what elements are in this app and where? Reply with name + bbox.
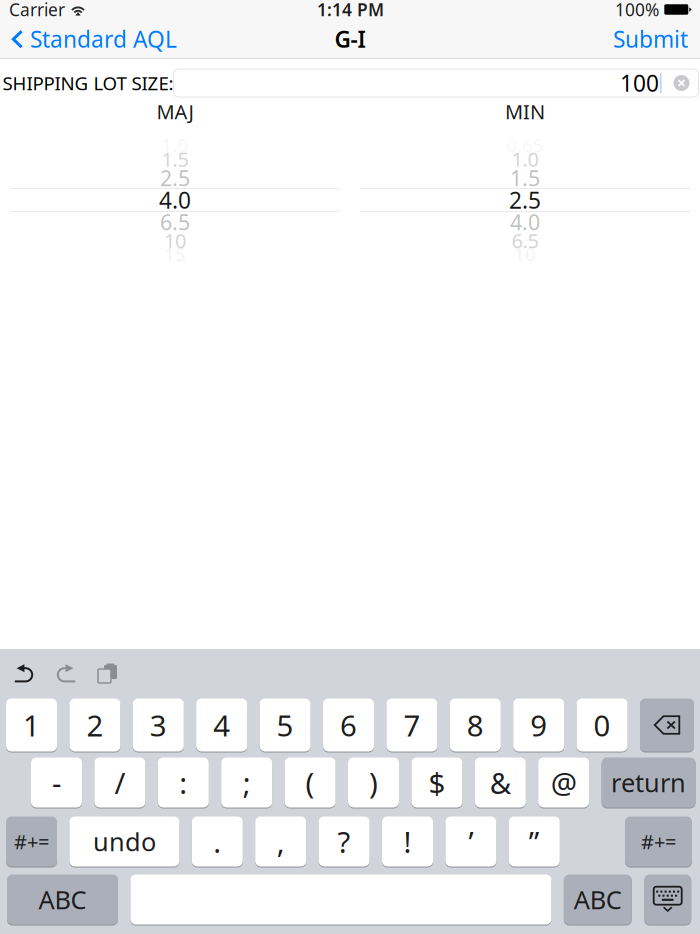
staticText: 2.5 [160,164,190,192]
staticText: ABC [574,883,622,916]
button[interactable]: ? [319,816,370,867]
button[interactable]: 6 [323,698,374,752]
staticText: MAJ [156,98,193,125]
button[interactable]: Redo [55,664,77,683]
button[interactable]: undo [69,816,179,867]
staticText: 1.5 [510,164,540,192]
button[interactable]: 3 [133,698,184,752]
button[interactable]: ! [382,816,433,867]
staticText: 100% [615,0,659,21]
staticText: 4.0 [510,208,540,236]
staticText: ? [338,822,351,861]
staticText: MIN [505,98,545,125]
staticText: Standard AQL [30,24,177,54]
button[interactable]: . [192,816,243,867]
button[interactable]: 5 [260,698,311,752]
staticText: 4 [213,705,230,744]
button[interactable]: $ [411,757,462,808]
button[interactable]: Hide keyboard [644,874,691,925]
staticText: 6.5 [511,227,538,254]
button[interactable]: Delete [640,698,694,752]
staticText: $ [428,763,445,802]
staticText: @ [551,763,577,802]
button[interactable]: : [158,757,209,808]
button[interactable]: & [475,757,526,808]
staticText: ! [403,822,411,861]
staticText: , [277,822,285,861]
button[interactable]: Standard AQL [0,20,185,58]
staticText: ” [529,822,540,861]
staticText: : [179,763,187,802]
button[interactable]: return [602,757,696,808]
staticText: 3 [150,705,167,744]
staticText: 4.0 [159,185,191,215]
staticText: 0.65 [506,133,544,157]
button[interactable]: 4 [196,698,247,752]
button[interactable]: #+= [625,816,692,867]
staticText: 0 [594,705,611,744]
button[interactable]: 9 [513,698,564,752]
staticText: 2.5 [509,185,541,215]
staticText: . [213,822,221,861]
staticText: 9 [530,705,547,744]
button[interactable]: / [94,757,145,808]
staticText: #+= [14,828,49,855]
staticText: 6 [340,705,357,744]
staticText: 100 [620,68,659,98]
button[interactable]: Submit [605,20,700,58]
staticText: Submit [613,24,688,54]
staticText: Carrier [9,0,65,21]
staticText: 10 [514,242,536,266]
button[interactable]: ” [509,816,560,867]
staticText: undo [93,825,156,858]
staticText: 15 [164,242,186,266]
staticText: 10 [164,227,186,254]
staticText: / [114,763,125,802]
staticText: SHIPPING LOT SIZE: [2,71,173,95]
button[interactable]: - [31,757,82,808]
staticText: 1:14 PM [317,0,384,21]
button[interactable]: 1 [6,698,57,752]
staticText: 1 [23,705,40,744]
staticText: ABC [38,883,86,916]
button[interactable]: 2 [69,698,120,752]
button[interactable]: ’ [445,816,496,867]
button[interactable]: 0 [577,698,628,752]
staticText: 2 [86,705,103,744]
button[interactable]: , [255,816,306,867]
staticText: & [490,763,511,802]
staticText: 1.0 [511,146,538,172]
staticText: 8 [467,705,484,744]
staticText: ( [306,763,315,802]
button[interactable]: ABC [7,874,118,925]
button[interactable]: #+= [6,816,57,867]
button[interactable]: Copy [98,663,118,683]
staticText: ) [369,763,378,802]
button[interactable]: @ [538,757,589,808]
staticText: 6.5 [160,208,190,236]
staticText: - [52,763,61,802]
staticText: ; [243,763,251,802]
staticText: return [611,766,686,799]
button[interactable]: Clear text [673,75,689,91]
button[interactable]: ABC [564,874,632,925]
staticText: G-I [334,24,365,54]
button[interactable] [130,874,551,925]
staticText: ’ [468,822,473,861]
staticText: 1.0 [161,133,188,157]
button[interactable]: Undo [13,664,35,683]
button[interactable]: ) [348,757,399,808]
staticText: 1.5 [161,146,188,172]
button[interactable]: ; [221,757,272,808]
staticText: #+= [641,828,676,855]
button[interactable]: 7 [386,698,437,752]
staticText: 5 [277,705,294,744]
button[interactable]: 8 [450,698,501,752]
staticText: 7 [403,705,420,744]
button[interactable]: ( [285,757,336,808]
